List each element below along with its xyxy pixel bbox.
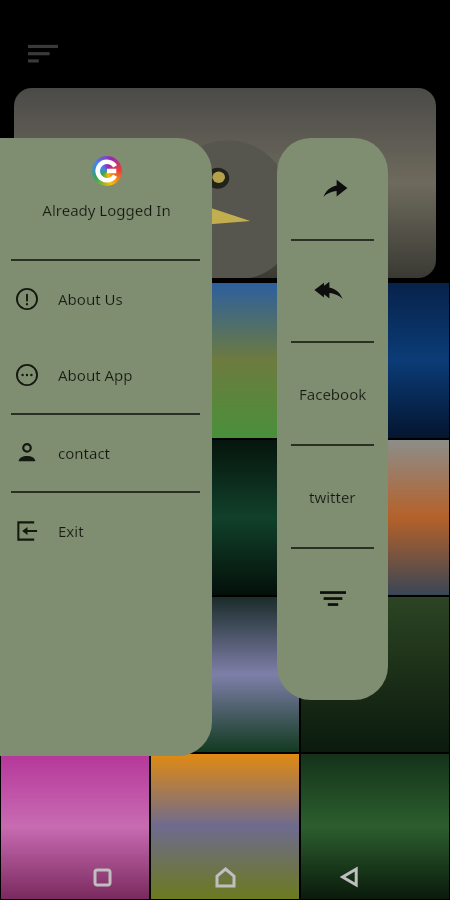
- button[interactable]: contact: [0, 415, 212, 491]
- staticText: contact: [58, 443, 110, 463]
- button[interactable]: Facebook: [277, 343, 388, 444]
- button[interactable]: Recents: [80, 855, 124, 899]
- button[interactable]: Home: [203, 855, 247, 899]
- button[interactable]: twitter: [277, 446, 388, 547]
- staticText: Exit: [58, 521, 84, 541]
- button[interactable]: About Us: [0, 261, 212, 337]
- staticText: About Us: [58, 289, 123, 309]
- button[interactable]: Reply: [277, 138, 388, 239]
- button[interactable]: Sort: [277, 549, 388, 649]
- button[interactable]: Menu: [28, 36, 64, 72]
- staticText: twitter: [309, 487, 356, 507]
- staticText: Already Logged In: [42, 200, 171, 220]
- button[interactable]: Back: [327, 855, 371, 899]
- staticText: Facebook: [299, 384, 367, 404]
- button[interactable]: About App: [0, 337, 212, 413]
- button[interactable]: Exit: [0, 493, 212, 569]
- button[interactable]: Forward: [277, 241, 388, 341]
- staticText: About App: [58, 365, 133, 385]
